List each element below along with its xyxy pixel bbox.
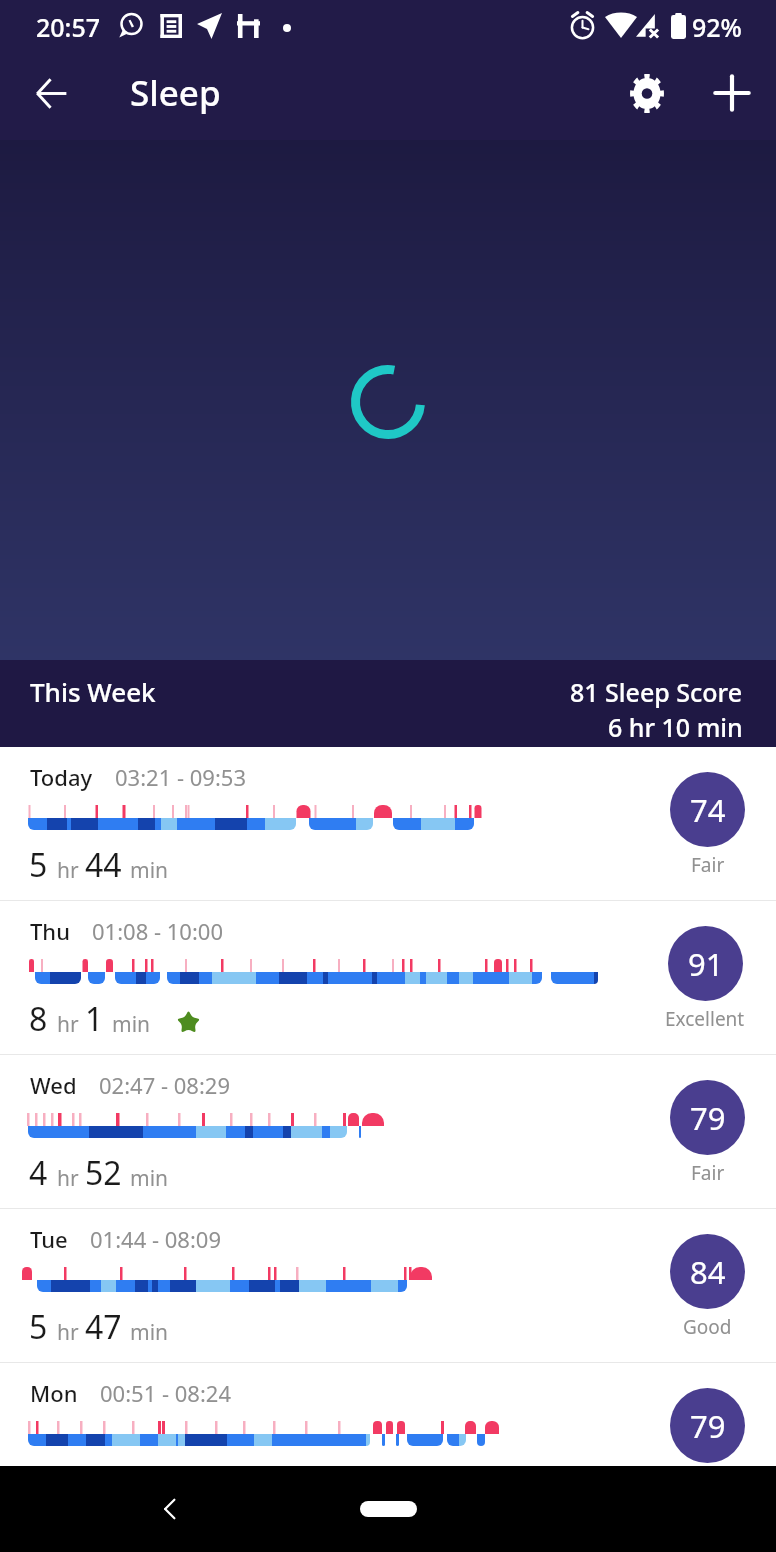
staticText: Fair bbox=[691, 852, 725, 878]
staticText: Wed bbox=[30, 1070, 77, 1100]
staticText: Good bbox=[683, 1314, 732, 1340]
staticText: 91 bbox=[688, 943, 724, 985]
staticText: Mon bbox=[30, 1378, 78, 1408]
staticText: 47 bbox=[85, 1305, 122, 1349]
staticText: 52 bbox=[85, 1151, 122, 1195]
staticText: Sleep bbox=[130, 69, 221, 117]
button[interactable]: Back bbox=[148, 1487, 192, 1531]
staticText: 79 bbox=[690, 1405, 726, 1447]
staticText: 03:21 - 09:53 bbox=[115, 762, 246, 792]
staticText: This Week bbox=[30, 674, 156, 709]
button[interactable]: Wed bbox=[0, 1055, 776, 1208]
staticText: 01:08 - 10:00 bbox=[92, 916, 223, 946]
staticText: 5 bbox=[29, 843, 48, 887]
staticText: Excellent bbox=[665, 1006, 745, 1032]
staticText: hr bbox=[57, 1164, 79, 1193]
staticText: min bbox=[112, 1010, 151, 1039]
staticText: Today bbox=[30, 762, 93, 792]
staticText: min bbox=[130, 1318, 169, 1347]
button[interactable]: Mon bbox=[0, 1363, 776, 1516]
staticText: 81 Sleep Score bbox=[570, 675, 743, 709]
button[interactable]: Add bbox=[708, 69, 756, 117]
staticText: 02:47 - 08:29 bbox=[99, 1070, 230, 1100]
staticText: 79 bbox=[690, 1097, 726, 1139]
button[interactable]: Settings bbox=[623, 69, 671, 117]
button[interactable]: Today bbox=[0, 747, 776, 900]
staticText: 1 bbox=[85, 997, 104, 1041]
staticText: 84 bbox=[690, 1251, 726, 1293]
button[interactable]: Tue bbox=[0, 1209, 776, 1362]
staticText: 33 bbox=[85, 1459, 122, 1503]
staticText: min bbox=[130, 1164, 169, 1193]
button[interactable]: Thu bbox=[0, 901, 776, 1054]
staticText: 6 bbox=[29, 1459, 48, 1503]
staticText: 4 bbox=[29, 1151, 48, 1195]
button[interactable]: Back bbox=[27, 69, 75, 117]
staticText: 00:51 - 08:24 bbox=[100, 1378, 231, 1408]
button[interactable]: Home bbox=[360, 1501, 417, 1517]
staticText: hr bbox=[57, 856, 79, 885]
staticText: Fair bbox=[691, 1160, 725, 1186]
staticText: 01:44 - 08:09 bbox=[90, 1224, 221, 1254]
staticText: Thu bbox=[30, 916, 70, 946]
staticText: hr bbox=[57, 1010, 79, 1039]
staticText: 8 bbox=[29, 997, 48, 1041]
staticText: Tue bbox=[30, 1224, 68, 1254]
staticText: 92% bbox=[692, 10, 742, 44]
staticText: min bbox=[130, 856, 169, 885]
staticText: hr bbox=[57, 1318, 79, 1347]
staticText: 20:57 bbox=[36, 10, 101, 44]
staticText: 5 bbox=[29, 1305, 48, 1349]
staticText: 74 bbox=[690, 789, 726, 831]
staticText: 6 hr 10 min bbox=[608, 710, 743, 744]
staticText: 44 bbox=[85, 843, 122, 887]
